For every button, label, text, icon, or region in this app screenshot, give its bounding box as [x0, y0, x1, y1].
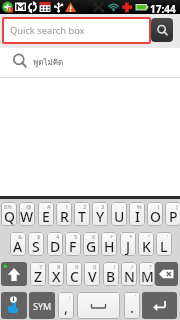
staticText: & — [18, 233, 23, 241]
button[interactable]: + — [101, 232, 117, 256]
staticText: O — [150, 207, 161, 226]
staticText: L — [160, 237, 168, 256]
staticText: 7 — [39, 263, 43, 271]
staticText: ! — [114, 263, 116, 271]
staticText: Y — [96, 207, 105, 226]
button[interactable]: 4 — [47, 232, 63, 256]
button[interactable]: Backspace — [155, 262, 178, 286]
button[interactable]: 9 — [66, 262, 82, 286]
staticText: 8 — [57, 263, 61, 271]
button[interactable]: 3 — [92, 202, 108, 226]
button[interactable]: * — [120, 232, 136, 256]
staticText: Quick search box — [10, 24, 85, 37]
staticText: Z — [34, 267, 43, 286]
staticText: 0 — [93, 263, 97, 271]
button[interactable]: EN — [1, 202, 17, 226]
staticText: / — [131, 263, 134, 271]
staticText: I — [135, 207, 140, 226]
staticText: F — [69, 237, 77, 256]
button[interactable]: ! — [103, 262, 119, 286]
button[interactable]: & — [10, 232, 26, 256]
button[interactable]: 5 — [65, 232, 81, 256]
staticText: 9 — [75, 263, 79, 271]
button[interactable]: " — [138, 232, 154, 256]
button[interactable]: $ — [28, 232, 44, 256]
button[interactable]: Enter — [142, 292, 177, 319]
staticText: 4 — [56, 233, 60, 241]
staticText: K — [142, 237, 151, 256]
button[interactable]: SYM — [29, 292, 55, 319]
staticText: S — [32, 237, 40, 256]
staticText: EN — [4, 203, 12, 211]
button[interactable]: Space — [77, 292, 120, 319]
staticText: ? — [149, 263, 152, 271]
staticText: ( — [158, 203, 160, 211]
staticText: - — [122, 203, 124, 211]
button[interactable]: พูดไม่คิด — [0, 48, 180, 77]
staticText: $ — [37, 233, 41, 241]
button[interactable]: / — [121, 262, 137, 286]
staticText: 1 — [65, 203, 69, 211]
button[interactable]: Input method — [1, 292, 27, 319]
staticText: 5 — [74, 233, 78, 241]
staticText: A — [13, 237, 23, 256]
button[interactable]: % — [129, 202, 145, 226]
staticText: พูดไม่คิด — [33, 56, 64, 69]
button[interactable]: Quick search box — [4, 19, 149, 42]
staticText: , — [64, 298, 68, 317]
button[interactable]: Shift — [1, 262, 27, 286]
staticText: R — [60, 207, 69, 226]
staticText: . — [130, 298, 134, 317]
staticText: H — [104, 237, 115, 256]
button[interactable]: ) — [165, 202, 180, 226]
staticText: 17:44 — [150, 2, 176, 16]
staticText: T — [78, 207, 86, 226]
staticText: W — [20, 207, 34, 226]
button[interactable]: ' — [124, 292, 140, 319]
button[interactable]: 8 — [48, 262, 64, 286]
staticText: D — [50, 237, 61, 256]
staticText: ' — [135, 293, 137, 301]
button[interactable]: @ — [19, 202, 35, 226]
button[interactable]: 7 — [30, 262, 46, 286]
staticText: SYM — [33, 300, 52, 312]
staticText: N — [124, 267, 135, 286]
button[interactable]: Search — [151, 18, 173, 42]
staticText: * — [129, 233, 133, 241]
staticText: ) — [176, 203, 178, 211]
button[interactable]: 2 — [74, 202, 90, 226]
button[interactable]: ; — [58, 292, 74, 319]
button[interactable]: # — [38, 202, 54, 226]
staticText: + — [110, 233, 114, 241]
staticText: E — [42, 207, 50, 226]
staticText: ; — [69, 293, 71, 301]
staticText: J — [126, 237, 131, 256]
staticText: 6 — [92, 233, 96, 241]
staticText: X — [52, 267, 61, 286]
button[interactable]: ( — [147, 202, 163, 226]
staticText: Q — [4, 207, 15, 226]
staticText: % — [137, 203, 142, 211]
staticText: B — [106, 267, 116, 286]
staticText: 3 — [101, 203, 105, 211]
button[interactable]: 0 — [84, 262, 100, 286]
staticText: U — [114, 207, 125, 226]
button[interactable]: ' — [156, 232, 172, 256]
staticText: C — [70, 267, 79, 286]
button[interactable]: 1 — [56, 202, 72, 226]
button[interactable]: ? — [139, 262, 155, 286]
staticText: # — [47, 203, 51, 211]
staticText: P — [169, 207, 178, 226]
staticText: ' — [167, 233, 169, 241]
staticText: 2 — [83, 203, 87, 211]
staticText: @ — [26, 203, 32, 211]
staticText: " — [148, 233, 151, 241]
button[interactable]: - — [111, 202, 127, 226]
staticText: M — [141, 267, 154, 286]
button[interactable]: 6 — [83, 232, 99, 256]
staticText: G — [86, 237, 97, 256]
staticText: V — [88, 267, 97, 286]
